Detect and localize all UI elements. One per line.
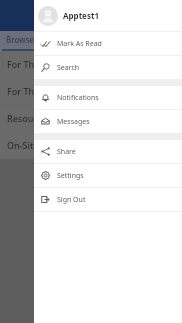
- staticText: For The: [7, 58, 40, 70]
- button[interactable]: Mark As Read: [34, 32, 182, 55]
- button[interactable]: Sign Out: [34, 188, 182, 211]
- staticText: For The: [7, 85, 40, 97]
- button[interactable]: Share: [34, 140, 182, 163]
- button[interactable]: Messages: [34, 110, 182, 133]
- staticText: Messages: [57, 117, 90, 127]
- staticText: Search: [57, 63, 80, 73]
- staticText: Browse: [6, 34, 35, 45]
- staticText: On-Site C: [7, 139, 47, 151]
- button[interactable]: Search: [34, 56, 182, 79]
- button[interactable]: For The: [0, 78, 182, 104]
- button[interactable]: For The: [0, 51, 182, 77]
- staticText: Mark As Read: [57, 39, 102, 49]
- staticText: Resource: [7, 112, 47, 124]
- staticText: Sign Out: [57, 195, 86, 205]
- button[interactable]: Settings: [34, 164, 182, 187]
- button[interactable]: Notifications: [34, 86, 182, 109]
- staticText: Apptest1: [63, 10, 99, 21]
- button[interactable]: Apptest1: [34, 0, 182, 31]
- button[interactable]: Resource: [0, 105, 182, 131]
- button[interactable]: On-Site C: [0, 132, 182, 158]
- staticText: Settings: [57, 171, 84, 181]
- staticText: Share: [57, 147, 76, 157]
- staticText: Notifications: [57, 93, 99, 103]
